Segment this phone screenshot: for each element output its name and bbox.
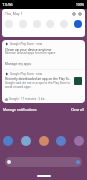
button[interactable]: Quick setting 5 <box>60 20 68 28</box>
button[interactable]: Google Play Store · now <box>2 40 85 69</box>
button[interactable]: Quick setting 2 <box>19 20 27 28</box>
button[interactable]: Search <box>5 157 82 167</box>
staticText: Clean up your device anytime <box>5 47 52 51</box>
staticText: Manage my apps <box>5 62 32 66</box>
button[interactable]: Quick setting 4 <box>46 20 54 28</box>
button[interactable]: App icon <box>56 136 66 146</box>
button[interactable]: App icon <box>3 136 13 146</box>
button[interactable]: Power <box>78 12 82 16</box>
button[interactable]: Settings <box>72 12 76 16</box>
button[interactable]: Manage my apps <box>5 60 82 67</box>
button[interactable]: App icon <box>39 136 49 146</box>
staticText: 13:56 <box>2 2 13 8</box>
staticText: Manage notifications <box>3 107 37 112</box>
staticText: Clear all <box>71 107 84 112</box>
button[interactable]: Quick setting 6 <box>74 20 82 28</box>
button[interactable]: Quick setting 3 <box>33 20 41 28</box>
staticText: Google · 11 minutes · 2 be... <box>9 97 47 101</box>
button[interactable]: App icon <box>21 136 31 146</box>
button[interactable]: Quick setting 1 <box>5 20 13 28</box>
button[interactable]: App icon <box>74 136 84 146</box>
staticText: Thu, May 1 <box>5 11 23 16</box>
staticText: Google Play Store · now <box>10 72 43 76</box>
button[interactable]: Manage notifications <box>3 107 37 112</box>
staticText: Remove unused apps for more space <box>5 51 56 55</box>
button[interactable]: Clear all <box>71 107 84 112</box>
staticText: Google said: do not re-scope to the Play… <box>5 81 72 89</box>
staticText: 100% <box>76 3 85 7</box>
staticText: Recently downloaded an app on the Play S… <box>5 77 72 81</box>
button[interactable]: Google Play Store · now <box>2 70 85 103</box>
staticText: Google Play Store · now <box>10 42 43 46</box>
